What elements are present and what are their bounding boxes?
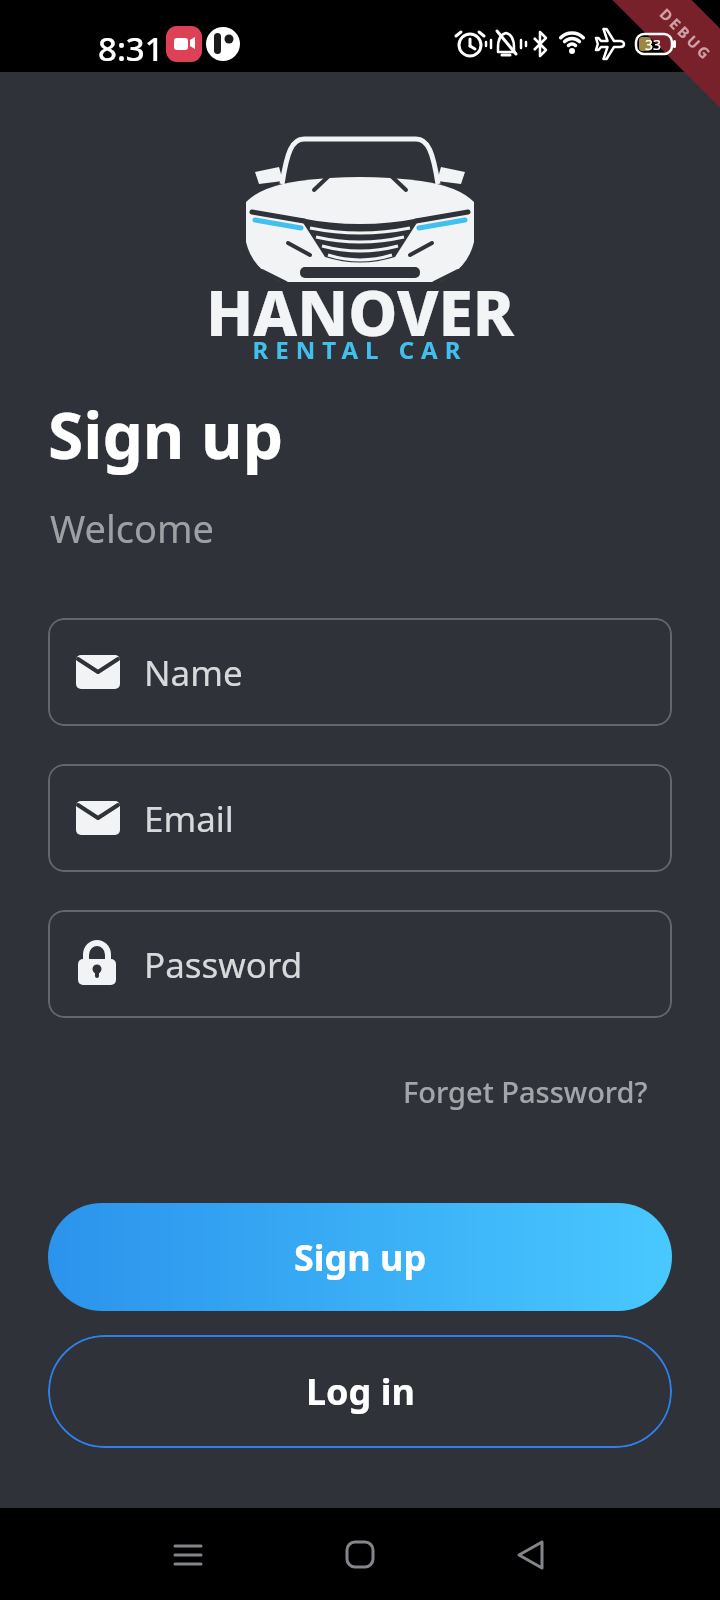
- staticText: Sign up: [294, 1233, 427, 1282]
- staticText: Password: [144, 941, 303, 989]
- staticText: Name: [144, 649, 243, 697]
- staticText: Welcome: [50, 502, 215, 554]
- staticText: 33: [645, 35, 662, 54]
- button[interactable]: Name: [48, 618, 672, 726]
- staticText: Email: [144, 795, 234, 843]
- button[interactable]: [500, 1524, 560, 1584]
- button[interactable]: Sign up: [48, 1203, 672, 1311]
- staticText: HANOVER: [0, 270, 720, 354]
- button[interactable]: [158, 1524, 218, 1584]
- staticText: Forget Password?: [403, 1072, 648, 1111]
- button[interactable]: Forget Password?: [403, 1072, 648, 1111]
- button[interactable]: [330, 1524, 390, 1584]
- button[interactable]: Password: [48, 910, 672, 1018]
- staticText: Sign up: [48, 391, 284, 478]
- staticText: DEBUG: [656, 4, 717, 65]
- staticText: Log in: [306, 1367, 415, 1416]
- staticText: RENTAL CAR: [0, 333, 720, 366]
- staticText: 8:31: [98, 26, 164, 71]
- button[interactable]: Email: [48, 764, 672, 872]
- button[interactable]: Log in: [48, 1335, 672, 1448]
